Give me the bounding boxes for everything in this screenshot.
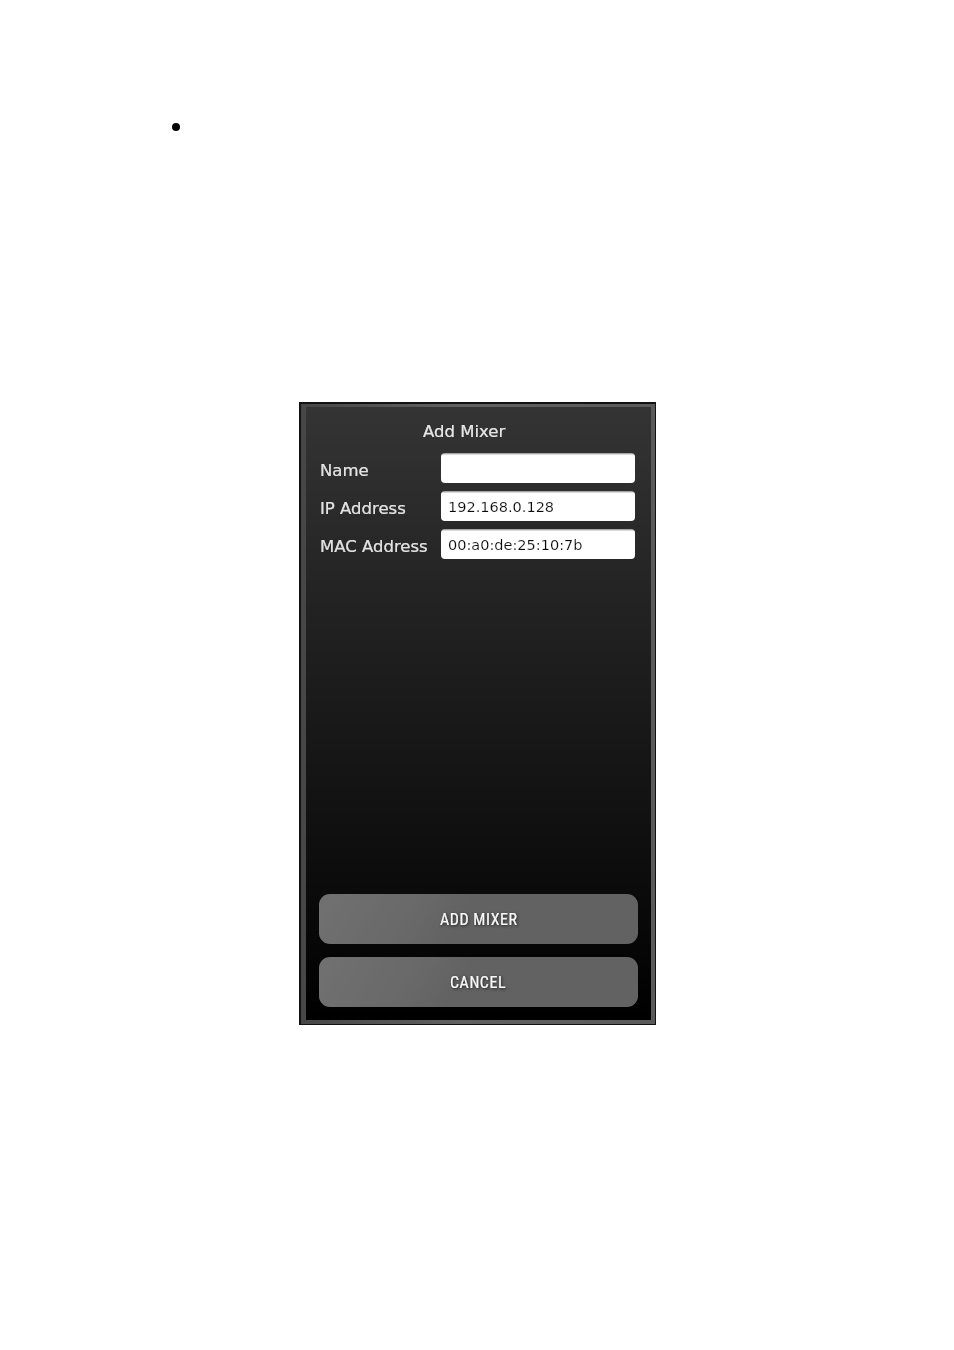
staticText: IP Address [320,499,406,518]
staticText: Name [320,461,369,480]
staticText: MAC Address [320,537,428,556]
button[interactable]: ADD MIXER [319,894,638,944]
staticText: 00:a0:de:25:10:7b [448,537,583,554]
staticText: ADD MIXER [440,910,518,929]
button[interactable]: MAC Address input field [441,529,635,559]
staticText: 192.168.0.128 [448,499,555,516]
button[interactable]: IP Address input field [441,491,635,521]
button[interactable]: Name input field [441,453,635,483]
staticText: Add Mixer [423,422,506,441]
button[interactable]: CANCEL [319,957,638,1007]
staticText: CANCEL [450,973,507,992]
